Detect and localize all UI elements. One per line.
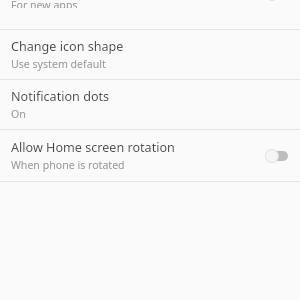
staticText: On [11,107,26,121]
button[interactable]: Add icon to Home screen [260,0,294,5]
button[interactable]: Allow Home screen rotation [0,130,300,181]
button[interactable]: Allow Home screen rotation [260,145,294,167]
staticText: When phone is rotated [11,158,125,172]
button[interactable]: Change icon shape [0,30,300,79]
staticText: Notification dots [11,88,110,105]
staticText: Change icon shape [11,38,124,55]
staticText: For new apps [11,0,78,8]
button[interactable]: Notification dots [0,80,300,129]
button[interactable]: Add icon to Home screen [0,0,300,8]
staticText: Use system default [11,57,106,71]
staticText: Allow Home screen rotation [11,139,175,156]
